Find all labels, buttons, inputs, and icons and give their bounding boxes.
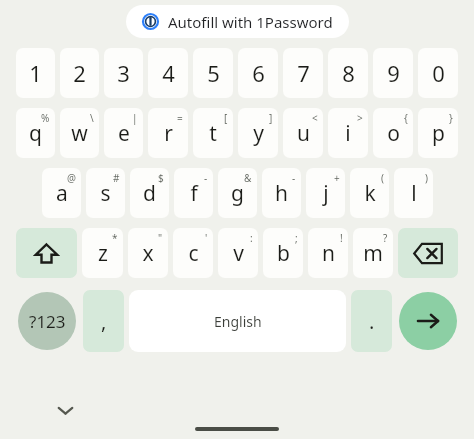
staticText: x — [142, 239, 154, 268]
button[interactable]: 5 — [193, 48, 233, 98]
button[interactable]: l — [394, 168, 433, 218]
staticText: < — [312, 111, 318, 125]
button[interactable]: y — [238, 108, 278, 158]
staticText: English — [214, 312, 262, 331]
staticText: : — [250, 231, 253, 245]
staticText: 4 — [162, 58, 175, 88]
staticText: o — [387, 119, 400, 148]
button[interactable]: Backspace — [398, 228, 458, 278]
button[interactable]: 1 — [16, 48, 55, 98]
staticText: * — [112, 231, 118, 245]
staticText: 9 — [387, 58, 400, 88]
button[interactable]: z — [82, 228, 123, 278]
button[interactable]: 9 — [373, 48, 413, 98]
staticText: " — [158, 231, 163, 245]
staticText: w — [71, 119, 88, 148]
button[interactable]: r — [148, 108, 188, 158]
button[interactable]: 8 — [328, 48, 368, 98]
staticText: 6 — [252, 58, 265, 88]
staticText: p — [432, 119, 445, 148]
button[interactable]: English — [129, 290, 346, 352]
button[interactable]: 6 — [238, 48, 278, 98]
staticText: a — [56, 179, 68, 208]
staticText: l — [411, 179, 417, 208]
staticText: 8 — [342, 58, 355, 88]
staticText: m — [363, 239, 383, 268]
button[interactable]: 7 — [283, 48, 323, 98]
staticText: Autofill with 1Password — [168, 12, 333, 32]
button[interactable]: 3 — [104, 48, 143, 98]
button[interactable]: s — [86, 168, 125, 218]
staticText: ; — [295, 231, 298, 245]
staticText: ( — [381, 171, 384, 185]
staticText: | — [132, 111, 138, 125]
staticText: . — [369, 308, 375, 335]
staticText: ?123 — [29, 310, 66, 333]
staticText: k — [364, 179, 376, 208]
staticText: ) — [425, 171, 428, 185]
staticText: t — [209, 119, 217, 148]
button[interactable]: 2 — [60, 48, 99, 98]
staticText: g — [231, 179, 244, 208]
button[interactable]: u — [283, 108, 323, 158]
staticText: ! — [340, 231, 343, 245]
button[interactable]: o — [373, 108, 413, 158]
button[interactable]: a — [42, 168, 81, 218]
staticText: v — [233, 239, 244, 268]
staticText: 1 — [29, 58, 42, 88]
staticText: & — [244, 171, 252, 185]
button[interactable]: c — [173, 228, 213, 278]
staticText: h — [275, 179, 288, 208]
button[interactable]: h — [262, 168, 301, 218]
staticText: 7 — [297, 58, 310, 88]
button[interactable]: x — [128, 228, 168, 278]
staticText: z — [98, 239, 108, 268]
button[interactable]: e — [104, 108, 143, 158]
button[interactable]: m — [353, 228, 393, 278]
staticText: { — [404, 111, 408, 125]
staticText: - — [292, 171, 296, 185]
staticText: \ — [90, 111, 94, 125]
staticText: > — [357, 111, 363, 125]
button[interactable]: b — [263, 228, 303, 278]
button[interactable]: 0 — [418, 48, 458, 98]
button[interactable]: n — [308, 228, 348, 278]
staticText: ' — [205, 231, 208, 245]
button[interactable]: Hide keyboard — [48, 393, 82, 427]
staticText: [ — [224, 111, 228, 125]
staticText: 0 — [432, 58, 445, 88]
staticText: 5 — [207, 58, 220, 88]
button[interactable]: j — [306, 168, 345, 218]
staticText: s — [100, 179, 111, 208]
staticText: , — [101, 308, 107, 335]
staticText: r — [164, 119, 173, 148]
staticText: # — [113, 171, 120, 185]
button[interactable]: f — [174, 168, 213, 218]
staticText: = — [177, 111, 183, 125]
button[interactable]: i — [328, 108, 368, 158]
button[interactable]: Shift — [16, 228, 77, 278]
button[interactable]: d — [130, 168, 169, 218]
button[interactable]: w — [60, 108, 99, 158]
button[interactable]: p — [418, 108, 458, 158]
button[interactable]: 4 — [148, 48, 188, 98]
staticText: u — [297, 119, 310, 148]
button[interactable]: q — [16, 108, 55, 158]
button[interactable]: g — [218, 168, 257, 218]
staticText: n — [322, 239, 335, 268]
staticText: ] — [269, 111, 273, 125]
staticText: } — [449, 111, 453, 125]
button[interactable]: , — [83, 290, 124, 352]
button[interactable]: Autofill with 1Password — [126, 5, 349, 38]
staticText: d — [143, 179, 156, 208]
staticText: c — [188, 239, 199, 268]
staticText: 3 — [117, 58, 130, 88]
button[interactable]: Enter — [399, 292, 457, 350]
button[interactable]: . — [351, 290, 392, 352]
staticText: % — [41, 111, 50, 125]
button[interactable]: t — [193, 108, 233, 158]
button[interactable]: v — [218, 228, 258, 278]
button[interactable]: k — [350, 168, 389, 218]
button[interactable]: ?123 — [18, 292, 76, 350]
staticText: $ — [158, 171, 164, 185]
